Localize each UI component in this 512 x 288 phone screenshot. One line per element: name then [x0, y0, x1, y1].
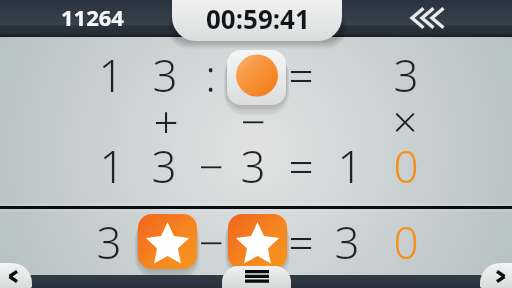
staticText: =	[288, 136, 314, 196]
staticText: 3	[96, 212, 122, 272]
staticText: 00:59:41	[206, 1, 310, 36]
staticText: 3	[393, 45, 419, 105]
staticText: 3	[152, 45, 178, 105]
button[interactable]: Star	[228, 214, 287, 269]
button[interactable]: Timer	[172, 0, 342, 41]
staticText: 3	[334, 212, 360, 272]
staticText: 1	[98, 45, 124, 105]
staticText: =	[288, 212, 314, 272]
staticText: −	[240, 91, 266, 151]
staticText: +	[153, 91, 179, 151]
button[interactable]: Star	[138, 214, 197, 269]
staticText: ×	[392, 91, 418, 151]
staticText: 1	[337, 136, 363, 196]
button[interactable]: Unknown value	[227, 50, 286, 105]
button[interactable]: 11264	[52, 0, 132, 34]
button[interactable]: Rewind	[404, 2, 452, 34]
button[interactable]: Menu	[222, 266, 291, 288]
staticText: 0	[393, 212, 419, 272]
staticText: :	[205, 45, 216, 105]
button[interactable]: Previous	[0, 263, 32, 288]
staticText: 3	[240, 136, 266, 196]
staticText: 0	[393, 136, 419, 196]
staticText: 1	[99, 136, 125, 196]
staticText: 3	[151, 136, 177, 196]
staticText: 11264	[61, 2, 124, 32]
staticText: −	[198, 136, 224, 196]
button[interactable]: Next	[480, 263, 512, 288]
staticText: =	[288, 45, 314, 105]
staticText: −	[198, 212, 224, 272]
